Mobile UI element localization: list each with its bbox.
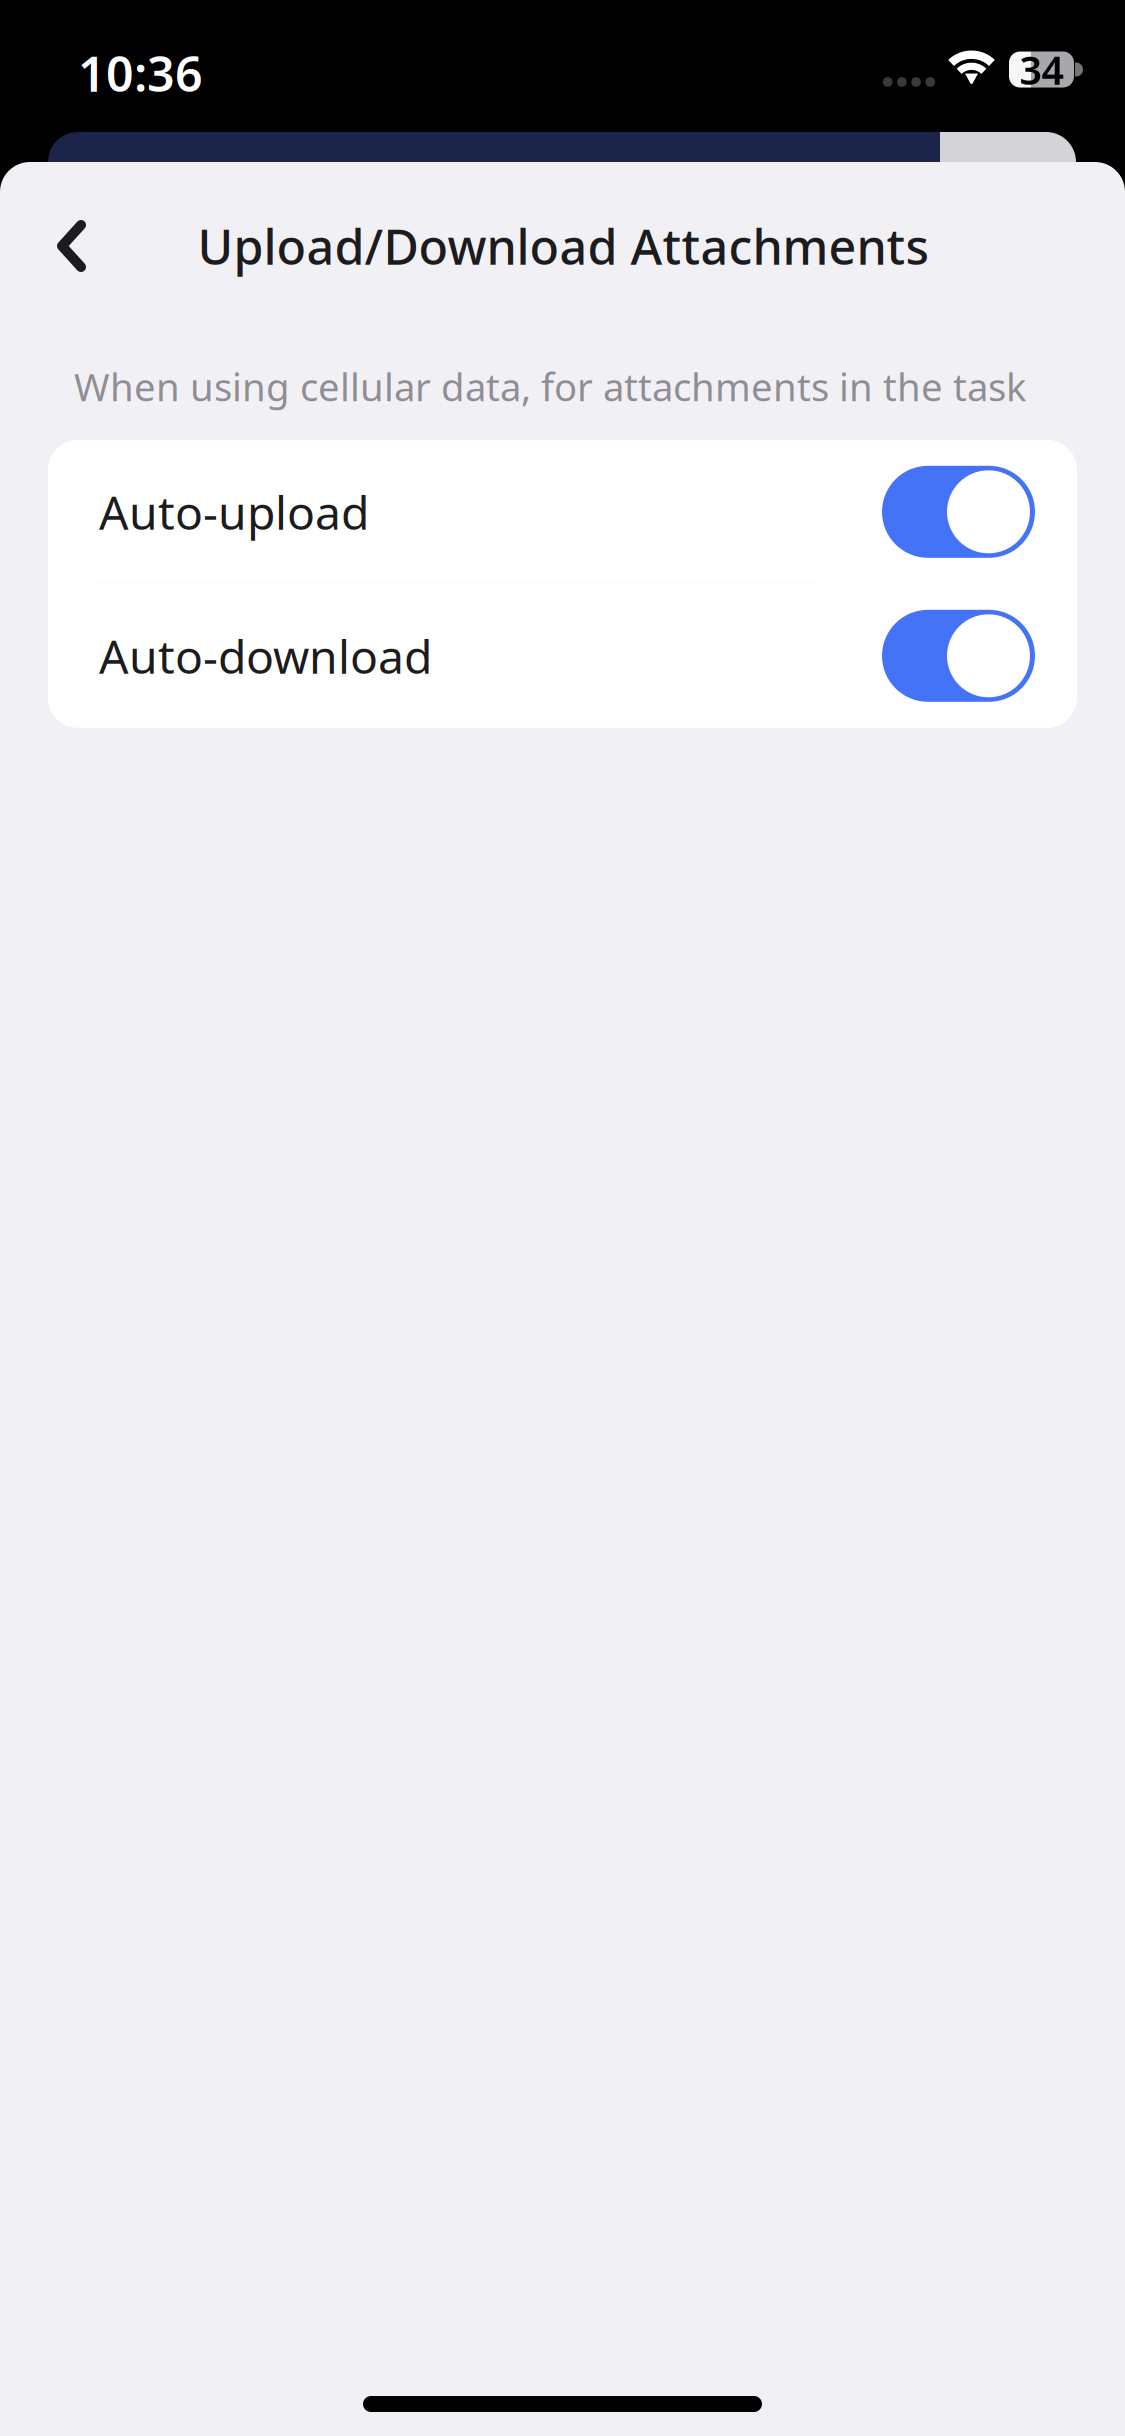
staticText: Auto-upload xyxy=(99,481,369,542)
button[interactable]: Auto-upload xyxy=(48,440,1077,584)
staticText: Auto-download xyxy=(99,625,432,686)
button[interactable]: Auto-download xyxy=(48,584,1077,728)
staticText: 34 xyxy=(1019,43,1063,96)
staticText: 10:36 xyxy=(78,41,203,105)
button[interactable]: Back xyxy=(0,200,126,292)
staticText: Upload/Download Attachments xyxy=(197,214,929,278)
staticText: When using cellular data, for attachment… xyxy=(74,361,1026,412)
